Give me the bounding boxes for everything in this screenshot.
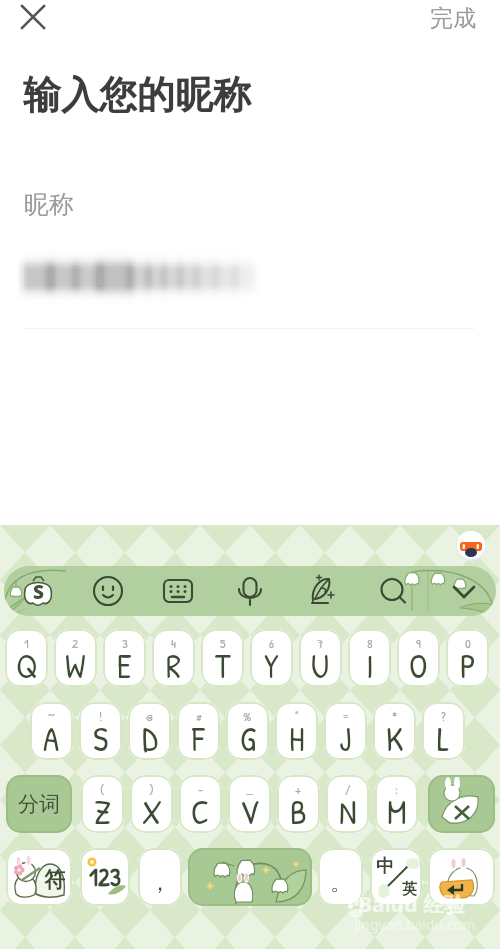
staticText: 7 [317,634,324,652]
staticText: 1 [24,634,29,652]
staticText: 。 [330,869,352,897]
button[interactable]: 2 [54,629,97,687]
button[interactable]: : [375,775,418,833]
button[interactable]: 9 [397,629,440,687]
button[interactable]: ! [79,702,122,760]
button[interactable]: Assistant [455,530,487,562]
button[interactable]: 4 [152,629,195,687]
staticText: U [311,644,330,687]
staticText: 6 [269,634,275,652]
button[interactable]: ， [138,848,182,906]
staticText: K [386,717,404,760]
button[interactable]: Space [188,848,312,906]
staticText: 3 [122,634,128,652]
staticText: jingyan.baidu.com [354,915,476,934]
button[interactable]: Collapse keyboard [442,569,486,613]
staticText: # [196,707,202,725]
staticText: ! [99,707,103,725]
button[interactable]: Chinese English toggle [370,848,422,906]
button[interactable]: ? [422,702,465,760]
button[interactable]: 。 [318,848,363,906]
button[interactable]: Handwriting [300,569,344,613]
staticText: D [142,717,158,760]
staticText: ) [149,780,154,798]
staticText: E [117,644,132,687]
staticText: % [243,707,252,725]
staticText: Baidu 经验 [358,890,466,919]
staticText: O [409,644,428,687]
staticText: A [43,717,60,760]
staticText: + [295,780,302,798]
button[interactable]: Enter [428,848,495,906]
button[interactable]: Voice [228,569,272,613]
button[interactable]: ~ [30,702,73,760]
staticText: 9 [416,634,421,652]
staticText: 输入您的昵称 [23,71,251,119]
button[interactable]: Keyboard [156,569,200,613]
staticText: 完成 [430,4,476,33]
button[interactable]: 完成 [426,0,480,37]
button[interactable]: - [179,775,222,833]
button[interactable]: 分词 [6,775,72,833]
staticText: V [240,790,259,833]
button[interactable]: Backspace [428,775,495,833]
staticText: N [339,790,357,833]
staticText: = [342,707,350,725]
staticText: H [289,717,305,760]
staticText: R [166,644,181,687]
button[interactable]: 3 [103,629,146,687]
button[interactable]: 123 [80,848,130,906]
staticText: Y [264,644,279,687]
button[interactable]: % [226,702,269,760]
button[interactable]: _ [228,775,271,833]
button[interactable]: Emoji [86,569,130,613]
button[interactable]: 6 [250,629,293,687]
staticText: ~ [48,707,55,725]
staticText: 8 [367,634,373,652]
staticText: Q [16,644,38,687]
staticText: 123 [89,860,121,894]
button[interactable]: Sogou [16,569,60,613]
staticText: 英 [402,880,417,899]
staticText: / [345,780,351,798]
staticText: : [395,780,399,798]
button[interactable]: Symbols [6,848,72,906]
button[interactable]: 7 [299,629,342,687]
staticText: W [65,644,86,687]
button[interactable]: Search [371,569,415,613]
staticText: ， [149,869,171,897]
button[interactable]: + [277,775,320,833]
staticText: 2 [72,634,79,652]
staticText: T [215,644,231,687]
button[interactable]: Close [17,1,49,33]
button[interactable]: # [177,702,220,760]
staticText: 0 [465,634,471,652]
staticText: S [33,579,44,605]
staticText: 分词 [18,791,60,817]
button[interactable]: ( [81,775,124,833]
staticText: ? [441,707,446,725]
button[interactable]: 0 [446,629,489,687]
staticText: 5 [220,634,226,652]
staticText: S [93,717,109,760]
staticText: X [142,790,162,833]
staticText: M [387,790,407,833]
staticText: B [290,790,307,833]
staticText: " [295,707,299,725]
staticText: F [192,717,205,760]
button[interactable]: = [324,702,367,760]
button[interactable]: ) [130,775,173,833]
staticText: J [339,717,352,760]
button[interactable]: 5 [201,629,244,687]
button[interactable]: @ [128,702,171,760]
button[interactable]: / [326,775,369,833]
button[interactable]: 8 [348,629,391,687]
staticText: L [437,717,450,760]
button[interactable]: " [275,702,318,760]
staticText: P [460,644,476,687]
staticText: Z [94,790,111,833]
staticText: 昵称 [24,189,74,220]
button[interactable]: 1 [5,629,48,687]
staticText: I [366,644,374,687]
button[interactable]: * [373,702,416,760]
